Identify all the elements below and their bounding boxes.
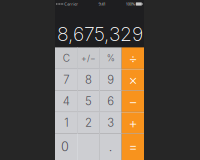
staticText: Carrier bbox=[64, 1, 78, 7]
staticText: 5 bbox=[85, 94, 92, 108]
button[interactable]: − bbox=[122, 90, 144, 112]
staticText: % bbox=[107, 53, 115, 63]
button[interactable]: 2 bbox=[77, 112, 99, 133]
button[interactable]: 1 bbox=[55, 112, 77, 133]
button[interactable]: + bbox=[122, 112, 144, 133]
staticText: . bbox=[109, 139, 113, 154]
button[interactable]: 0 bbox=[55, 133, 99, 160]
button[interactable]: 3 bbox=[99, 112, 122, 133]
staticText: 8 bbox=[85, 73, 92, 86]
staticText: × bbox=[128, 71, 137, 88]
staticText: 4 bbox=[63, 94, 70, 108]
staticText: C bbox=[63, 52, 70, 64]
staticText: 6 bbox=[107, 94, 114, 108]
button[interactable]: 7 bbox=[55, 69, 77, 90]
staticText: 100% bbox=[126, 1, 135, 7]
staticText: +/− bbox=[81, 53, 96, 63]
button[interactable]: 8 bbox=[77, 69, 99, 90]
button[interactable]: = bbox=[122, 133, 144, 160]
staticText: 9 bbox=[107, 73, 114, 86]
button[interactable]: 4 bbox=[55, 90, 77, 112]
button[interactable]: 9 bbox=[99, 69, 122, 90]
button[interactable]: . bbox=[99, 133, 122, 160]
staticText: = bbox=[128, 138, 137, 155]
staticText: 9:41 bbox=[98, 1, 105, 7]
staticText: 7 bbox=[63, 73, 69, 86]
staticText: 2 bbox=[85, 116, 92, 129]
staticText: 1 bbox=[64, 116, 68, 129]
button[interactable]: +/− bbox=[77, 47, 99, 69]
staticText: + bbox=[128, 114, 137, 131]
staticText: 0 bbox=[61, 139, 69, 154]
staticText: − bbox=[128, 93, 137, 110]
staticText: 3 bbox=[107, 116, 114, 129]
button[interactable]: ÷ bbox=[122, 47, 144, 69]
button[interactable]: 5 bbox=[77, 90, 99, 112]
button[interactable]: × bbox=[122, 69, 144, 90]
button[interactable]: % bbox=[99, 47, 122, 69]
staticText: 8,675,329 bbox=[57, 22, 143, 46]
staticText: ÷ bbox=[128, 50, 137, 67]
button[interactable]: C bbox=[55, 47, 77, 69]
button[interactable]: 6 bbox=[99, 90, 122, 112]
